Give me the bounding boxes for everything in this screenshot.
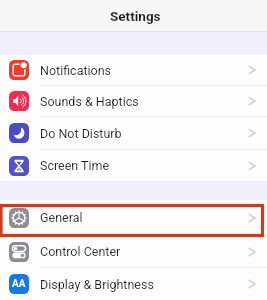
staticText: Settings <box>110 8 161 24</box>
staticText: Display & Brightness <box>40 277 154 292</box>
staticText: General <box>40 210 83 225</box>
staticText: Sounds & Haptics <box>40 94 139 109</box>
button[interactable]: Notifications <box>0 55 267 85</box>
staticText: Notifications <box>40 63 112 78</box>
button[interactable]: AA <box>0 268 267 300</box>
button[interactable]: Sounds & Haptics <box>0 86 267 116</box>
button[interactable]: Do Not Disturb <box>0 117 267 149</box>
staticText: Do Not Disturb <box>40 126 122 141</box>
button[interactable]: Screen Time <box>0 150 267 181</box>
staticText: AA <box>12 278 26 290</box>
staticText: Screen Time <box>40 158 110 173</box>
staticText: Control Center <box>40 244 121 259</box>
button[interactable]: Control Center <box>0 236 267 267</box>
button[interactable]: General <box>0 200 267 235</box>
